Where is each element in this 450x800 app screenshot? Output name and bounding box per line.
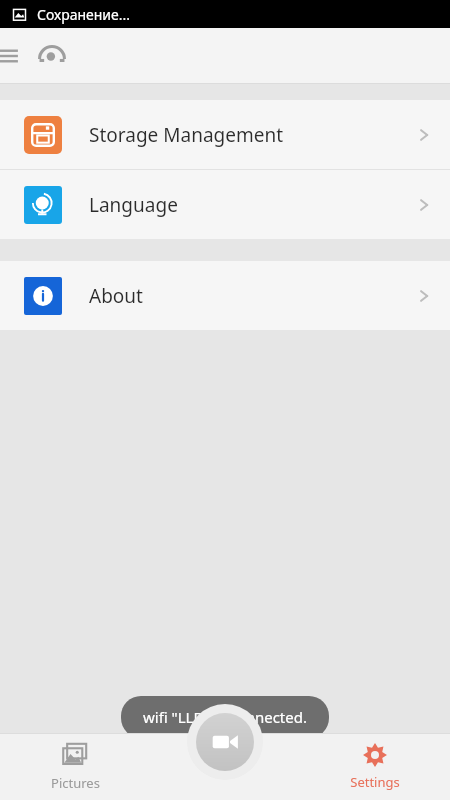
button[interactable]: About <box>0 261 450 330</box>
staticText: Storage Management <box>89 122 416 148</box>
staticText: Language <box>89 192 416 218</box>
button[interactable]: Menu <box>0 40 24 72</box>
button[interactable]: Record video <box>187 704 263 780</box>
button[interactable]: Pictures <box>0 733 150 800</box>
button[interactable]: Settings <box>300 733 450 800</box>
staticText: Settings <box>350 773 400 791</box>
staticText: Сохранение... <box>37 5 131 24</box>
staticText: Pictures <box>51 774 100 792</box>
button[interactable]: Language <box>0 170 450 239</box>
staticText: About <box>89 283 416 309</box>
button[interactable]: Status gauge <box>32 36 72 76</box>
staticText: wifi "LLD" is connected. <box>143 707 307 727</box>
button[interactable]: Storage Management <box>0 100 450 169</box>
